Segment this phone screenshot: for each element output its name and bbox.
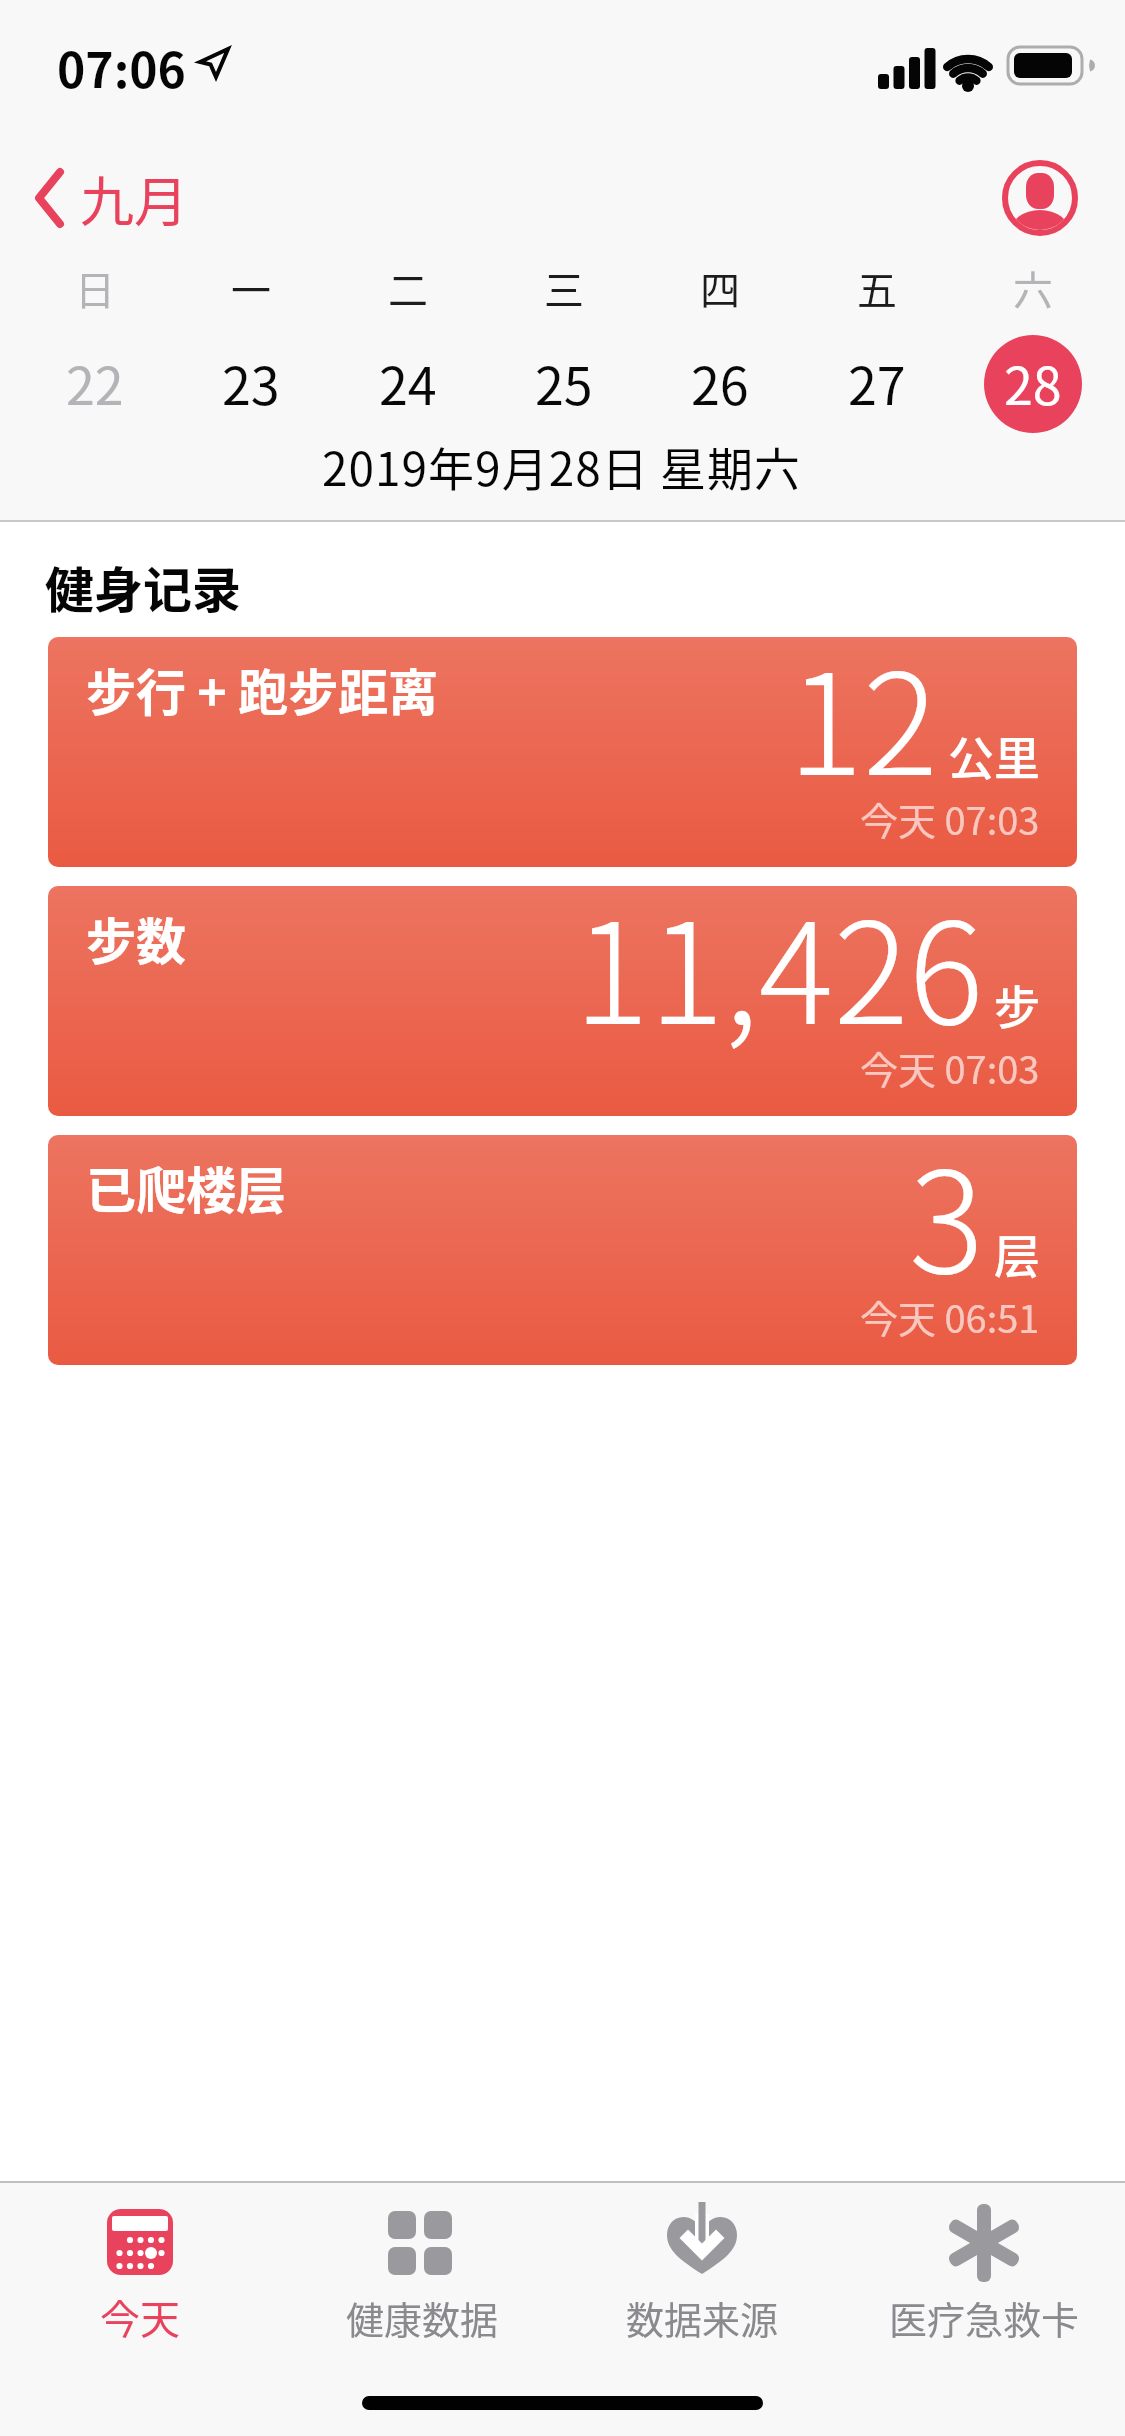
staticText: 医疗急救卡 bbox=[889, 2290, 1080, 2345]
button[interactable] bbox=[40, 329, 150, 439]
staticText: 今天 06:51 bbox=[860, 1289, 1040, 1344]
staticText: 公里 bbox=[948, 722, 1040, 789]
button[interactable] bbox=[984, 335, 1082, 433]
staticText: 26 bbox=[691, 345, 749, 420]
staticText: 四 bbox=[700, 259, 740, 317]
staticText: 24 bbox=[379, 345, 437, 420]
button[interactable] bbox=[196, 329, 306, 439]
button[interactable] bbox=[978, 329, 1088, 439]
staticText: 12 bbox=[788, 637, 938, 816]
button[interactable] bbox=[1000, 158, 1080, 238]
button[interactable] bbox=[665, 329, 775, 439]
button[interactable] bbox=[353, 329, 463, 439]
staticText: 五 bbox=[857, 259, 897, 317]
staticText: 数据来源 bbox=[626, 2290, 779, 2345]
staticText: 23 bbox=[222, 345, 280, 420]
button[interactable] bbox=[509, 329, 619, 439]
staticText: 已爬楼层 bbox=[86, 1151, 286, 1223]
staticText: 27 bbox=[848, 345, 906, 420]
staticText: 11,426 bbox=[574, 886, 984, 1065]
button[interactable]: 步行 + 跑步距离 bbox=[48, 637, 1077, 867]
button[interactable]: 步数 bbox=[48, 886, 1077, 1116]
staticText: 层 bbox=[994, 1220, 1040, 1287]
staticText: 九月 bbox=[80, 159, 188, 237]
staticText: 今天 07:03 bbox=[860, 791, 1040, 846]
button[interactable] bbox=[325, 2196, 515, 2346]
staticText: 步 bbox=[994, 971, 1040, 1038]
button[interactable] bbox=[607, 2196, 797, 2346]
staticText: 今天 07:03 bbox=[860, 1040, 1040, 1095]
staticText: 健身记录 bbox=[45, 551, 242, 622]
button[interactable]: 已爬楼层 bbox=[48, 1135, 1077, 1365]
staticText: 二 bbox=[388, 259, 428, 317]
button[interactable] bbox=[45, 2196, 235, 2346]
staticText: 步行 + 跑步距离 bbox=[86, 653, 439, 725]
button[interactable] bbox=[822, 329, 932, 439]
staticText: 22 bbox=[66, 345, 124, 420]
staticText: 07:06 bbox=[57, 32, 186, 102]
staticText: 2019年9月28日 星期六 bbox=[322, 433, 802, 500]
staticText: 健康数据 bbox=[346, 2290, 499, 2345]
staticText: 日 bbox=[75, 259, 115, 317]
button[interactable] bbox=[889, 2196, 1079, 2346]
staticText: 一 bbox=[231, 259, 271, 317]
staticText: 今天 bbox=[100, 2288, 180, 2346]
staticText: 3 bbox=[909, 1135, 984, 1314]
staticText: 三 bbox=[544, 259, 584, 317]
staticText: 六 bbox=[1013, 259, 1053, 317]
button[interactable] bbox=[25, 160, 195, 240]
staticText: 28 bbox=[1004, 345, 1062, 420]
staticText: 步数 bbox=[86, 902, 186, 974]
staticText: 25 bbox=[535, 345, 593, 420]
